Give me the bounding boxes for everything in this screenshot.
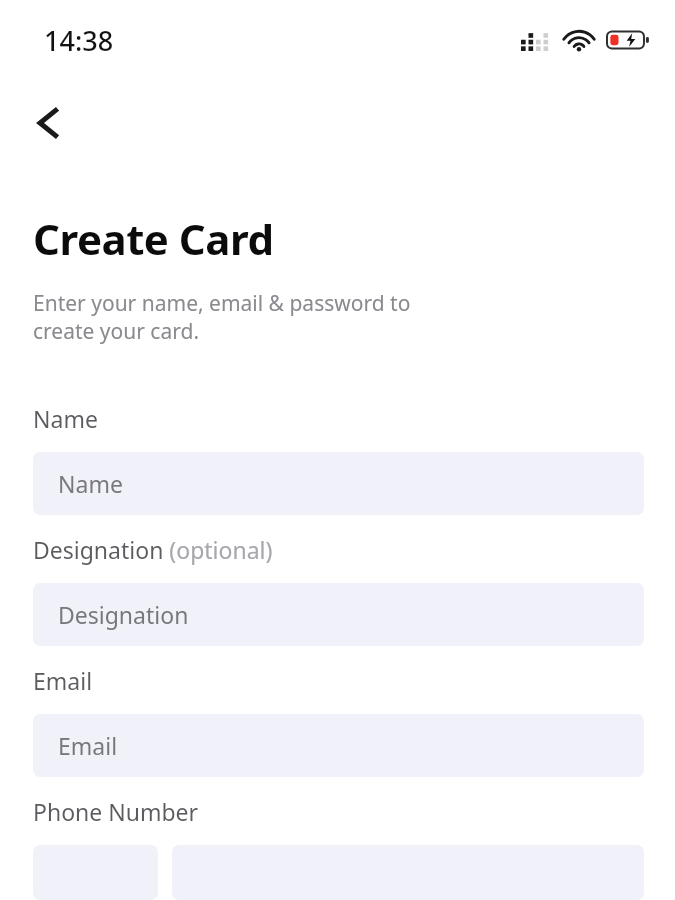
staticText: Email xyxy=(33,665,93,696)
button[interactable]: Designation xyxy=(33,583,644,646)
staticText: Email xyxy=(58,730,118,761)
button[interactable]: Email xyxy=(33,714,644,777)
staticText: Name xyxy=(33,403,98,434)
staticText: Designation xyxy=(58,599,189,630)
staticText: Create Card xyxy=(33,210,274,267)
staticText: Designation (optional) xyxy=(33,534,273,565)
staticText: Phone Number xyxy=(33,796,199,827)
staticText: 14:38 xyxy=(44,22,114,59)
button[interactable]: Back xyxy=(20,94,78,152)
staticText: Name xyxy=(58,468,123,499)
staticText: Enter your name, email & password to cre… xyxy=(33,289,411,345)
button[interactable]: Name xyxy=(33,452,644,515)
